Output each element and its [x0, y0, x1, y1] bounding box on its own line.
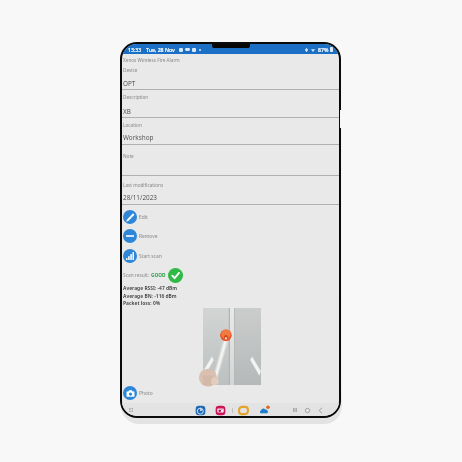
staticText: Device [123, 67, 138, 73]
staticText: GOOD [151, 272, 166, 279]
staticText: Last modifications [123, 182, 164, 188]
staticText: Remove [139, 233, 158, 240]
staticText: Average RSSI: -47 dBm [123, 285, 178, 292]
button[interactable]: Photo [122, 384, 339, 402]
staticText: Packet loss: 0% [123, 300, 161, 307]
staticText: Description [123, 94, 149, 100]
staticText: 13:33 [128, 46, 142, 53]
button[interactable]: Remove [122, 227, 339, 245]
staticText: Photo [139, 390, 153, 397]
button[interactable]: Apps [125, 404, 137, 416]
staticText: 87% [318, 46, 329, 53]
staticText: XB [123, 107, 131, 116]
staticText: Edit [139, 214, 148, 221]
staticText: Scan result: [123, 272, 151, 279]
staticText: Location [123, 122, 142, 128]
button[interactable]: Recents [289, 404, 301, 416]
button[interactable]: Files [237, 404, 249, 416]
button[interactable]: Cloud [258, 404, 270, 416]
staticText: Note [123, 153, 134, 159]
button[interactable]: Messenger [194, 404, 206, 416]
staticText: OPT [123, 79, 136, 88]
staticText: Average BN: -116 dBm [123, 293, 177, 300]
staticText: Xenos Wireless Fire Alarm [123, 57, 180, 63]
button[interactable]: Back [314, 404, 326, 416]
staticText: Tue, 28 Nov [146, 46, 175, 53]
button[interactable]: Start scan [122, 247, 339, 265]
staticText: Start scan [139, 253, 162, 260]
staticText: 28/11/2023 [123, 193, 157, 202]
staticText: Workshop [123, 133, 154, 142]
button[interactable]: Photos [214, 404, 226, 416]
button[interactable]: Edit [122, 208, 339, 226]
button[interactable]: Home [301, 404, 313, 416]
